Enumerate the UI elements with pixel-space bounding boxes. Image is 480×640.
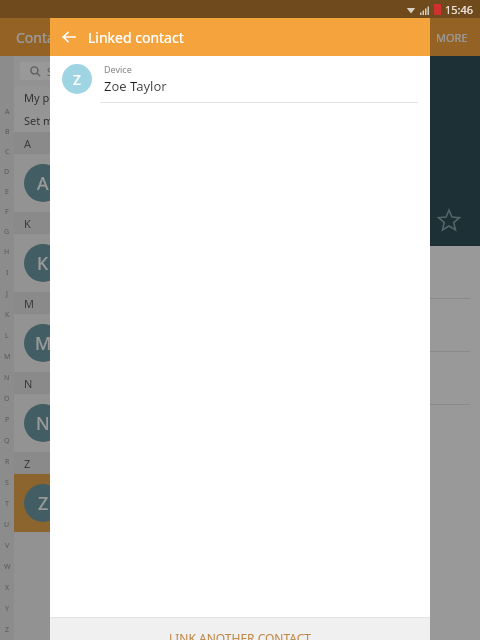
staticText: K: [24, 216, 31, 231]
staticText: Zoe Taylor: [104, 77, 167, 95]
button[interactable]: Z: [50, 56, 430, 102]
staticText: F: [5, 207, 9, 217]
staticText: X: [5, 583, 10, 593]
staticText: Linked contact: [88, 28, 184, 47]
staticText: Z: [73, 70, 82, 89]
staticText: Set my profile: [24, 113, 96, 128]
staticText: MORE: [436, 30, 468, 45]
staticText: M: [4, 352, 11, 362]
staticText: Z: [5, 625, 10, 635]
staticText: H: [4, 247, 10, 257]
staticText: 15:46: [445, 2, 474, 17]
staticText: T: [5, 499, 9, 509]
staticText: M: [24, 296, 34, 311]
staticText: P: [5, 415, 10, 425]
staticText: D: [4, 167, 10, 177]
staticText: A: [37, 171, 49, 196]
staticText: A: [24, 136, 32, 151]
staticText: G: [4, 227, 10, 237]
staticText: Y: [5, 604, 9, 614]
staticText: Q: [4, 436, 10, 446]
staticText: N: [24, 376, 33, 391]
staticText: K: [5, 310, 10, 320]
button[interactable]: Back: [50, 18, 88, 56]
staticText: U: [4, 520, 10, 530]
staticText: L: [5, 331, 9, 341]
staticText: M: [35, 331, 52, 356]
staticText: Contacts: [16, 28, 74, 47]
staticText: K: [37, 251, 49, 276]
staticText: N: [36, 411, 50, 436]
staticText: W: [4, 562, 11, 572]
button[interactable]: LINK ANOTHER CONTACT: [50, 618, 430, 640]
staticText: Z: [24, 456, 31, 471]
staticText: S: [5, 478, 9, 488]
staticText: Search: [47, 64, 82, 79]
staticText: My profile: [24, 90, 76, 105]
staticText: E: [5, 187, 9, 197]
staticText: C: [5, 147, 10, 157]
staticText: O: [4, 394, 10, 404]
staticText: LINK ANOTHER CONTACT: [169, 630, 311, 640]
staticText: J: [6, 289, 8, 299]
staticText: Device: [104, 63, 132, 75]
staticText: N: [4, 373, 10, 383]
staticText: R: [5, 457, 10, 467]
staticText: V: [5, 541, 10, 551]
staticText: I: [6, 268, 9, 278]
staticText: B: [5, 127, 10, 137]
staticText: A: [5, 107, 10, 117]
staticText: Z: [38, 491, 49, 516]
